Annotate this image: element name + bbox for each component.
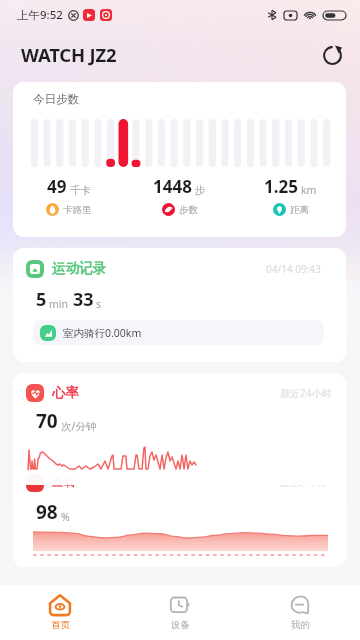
- staticText: 5: [36, 287, 47, 312]
- staticText: WATCH JZ2: [21, 42, 117, 67]
- staticText: 今日步数: [33, 92, 79, 106]
- staticText: 我的: [291, 619, 310, 631]
- staticText: 千卡: [70, 184, 91, 197]
- staticText: 运动记录: [52, 260, 106, 277]
- staticText: 步: [195, 184, 206, 197]
- staticText: 1448: [153, 175, 192, 198]
- staticText: 33: [73, 287, 94, 312]
- staticText: 室内骑行0.00km: [63, 326, 142, 340]
- staticText: km: [301, 183, 317, 197]
- button[interactable]: 设备: [120, 585, 240, 640]
- staticText: 首页: [51, 619, 70, 631]
- button[interactable]: 我的: [240, 585, 360, 640]
- staticText: 上午9:52: [17, 7, 63, 23]
- staticText: 距离: [290, 204, 309, 216]
- staticText: 次/分钟: [61, 419, 97, 433]
- staticText: 心率: [52, 384, 79, 401]
- button[interactable]: 刷新: [318, 41, 346, 69]
- button[interactable]: 首页: [0, 585, 120, 640]
- staticText: 49: [47, 175, 67, 198]
- staticText: 最近24小时: [280, 386, 332, 400]
- staticText: 设备: [171, 619, 190, 631]
- staticText: 98: [36, 499, 58, 525]
- staticText: 卡路里: [63, 204, 92, 216]
- button[interactable]: 心率: [13, 373, 346, 567]
- staticText: 1.25: [264, 175, 298, 198]
- staticText: %: [61, 510, 70, 524]
- button[interactable]: 运动记录: [13, 248, 346, 362]
- button[interactable]: 室内骑行0.00km: [33, 320, 324, 345]
- staticText: s: [96, 297, 102, 311]
- staticText: 最近24小时: [280, 476, 327, 488]
- staticText: 70: [36, 408, 58, 434]
- staticText: 步数: [179, 204, 198, 216]
- staticText: min: [49, 297, 69, 311]
- staticText: 血氧: [52, 475, 74, 489]
- staticText: 04/14 09:43: [266, 262, 321, 276]
- button[interactable]: 今日步数: [13, 82, 346, 237]
